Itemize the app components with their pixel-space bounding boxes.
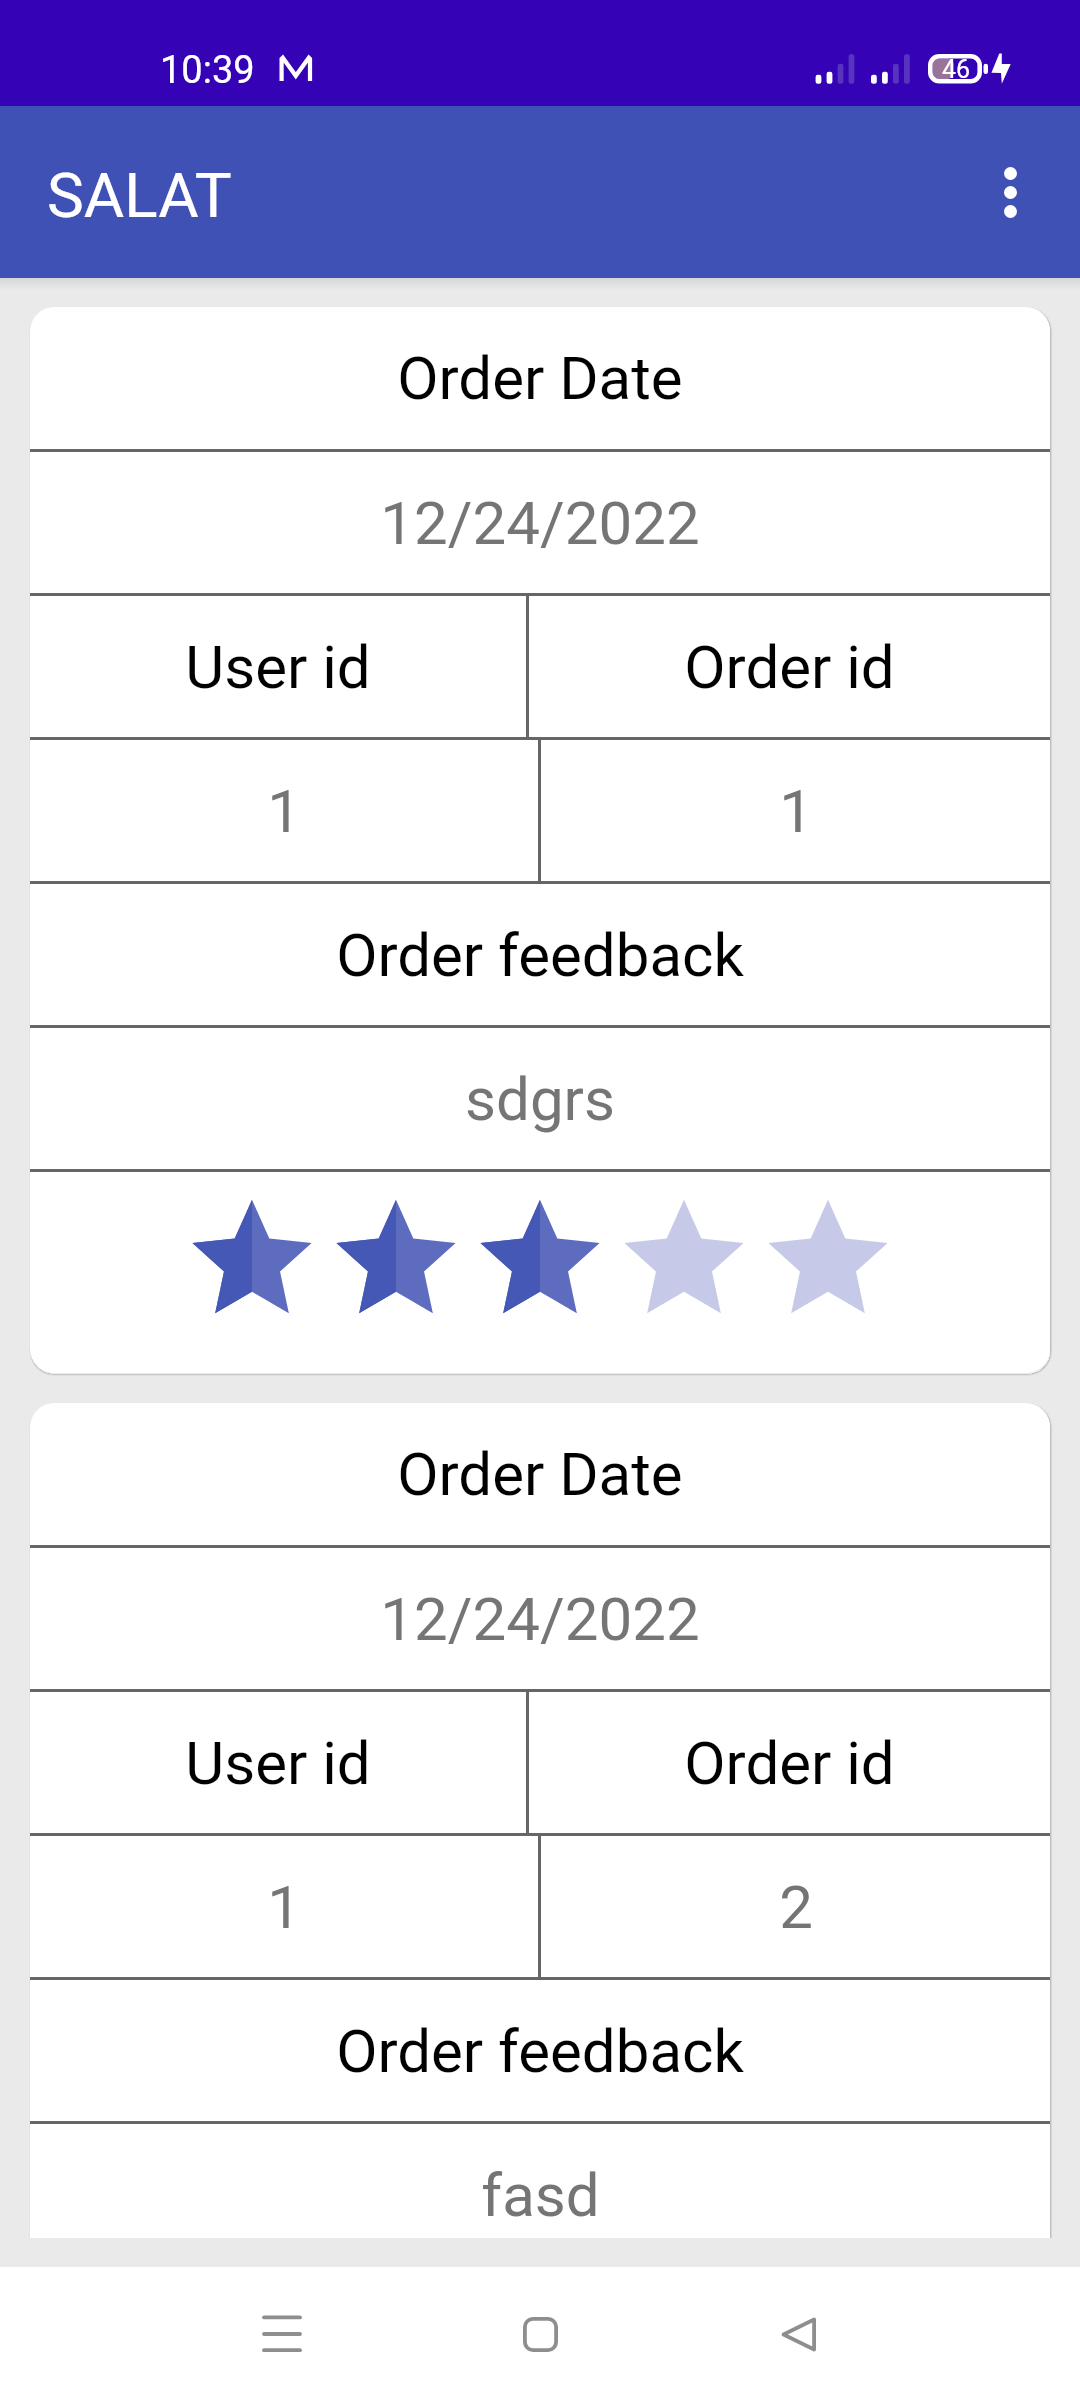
staticText: User id [185,632,371,702]
staticText: User id [185,1728,371,1798]
staticText: 1 [267,1872,301,1942]
staticText: 12/24/2022 [380,1584,700,1654]
staticText: fasd [481,2160,600,2230]
button[interactable]: Back [750,2286,846,2382]
staticText: 1 [267,776,301,846]
staticText: 12/24/2022 [380,488,700,558]
staticText: Order Date [397,343,683,413]
staticText: 2 [779,1872,813,1942]
staticText: 1 [779,776,813,846]
button[interactable]: Order Date [30,307,1050,1373]
staticText: Order feedback [336,2016,744,2086]
staticText: Order id [684,1728,895,1798]
staticText: SALAT [47,159,232,232]
staticText: Order Date [397,1439,683,1509]
button[interactable]: Order Date [30,1403,1050,2238]
staticText: 46 [942,55,971,84]
button[interactable]: Home [492,2286,588,2382]
staticText: Order feedback [336,920,744,990]
staticText: sdgrs [465,1064,615,1134]
button[interactable]: More options [968,150,1052,234]
staticText: Order id [684,632,895,702]
staticText: 10:39 [160,48,255,93]
button[interactable]: Recent apps [234,2286,330,2382]
